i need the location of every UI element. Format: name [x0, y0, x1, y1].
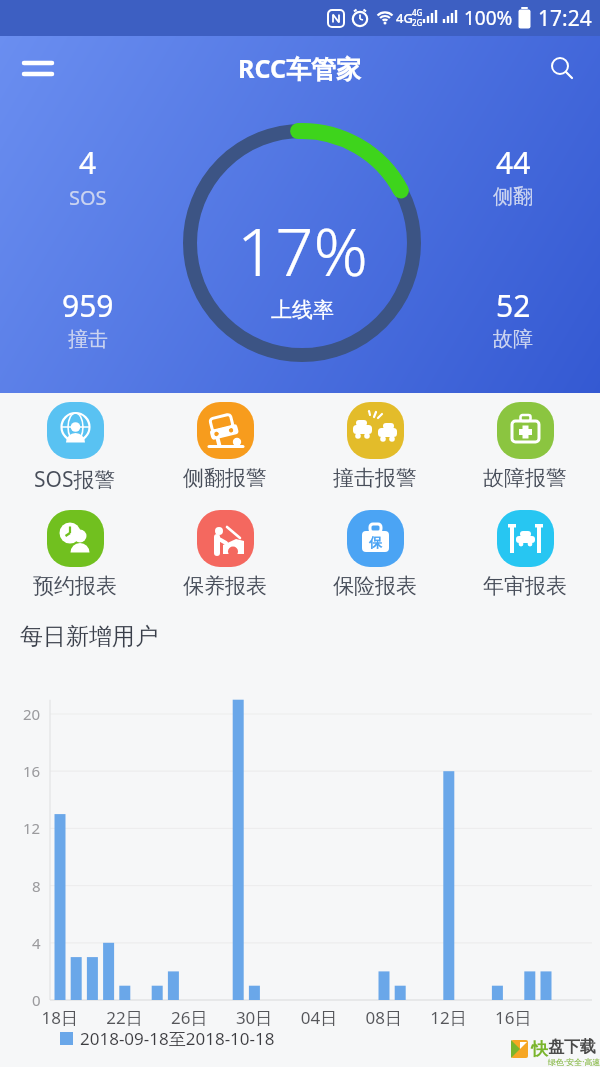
staticText: 预约报表: [33, 573, 117, 599]
staticText: 上线率: [271, 297, 334, 323]
staticText: 2G: [412, 17, 423, 28]
staticText: 52: [496, 285, 531, 326]
button[interactable]: 保养报表: [150, 510, 300, 599]
button[interactable]: 侧翻报警: [150, 402, 300, 491]
staticText: 侧翻: [493, 184, 533, 209]
button[interactable]: 保: [300, 510, 450, 599]
staticText: 侧翻报警: [183, 465, 267, 491]
staticText: 4G: [396, 9, 413, 27]
staticText: 44: [496, 142, 531, 183]
staticText: 故障报警: [483, 465, 567, 491]
button[interactable]: SOS报警: [0, 402, 150, 494]
button[interactable]: 预约报表: [0, 510, 150, 599]
button[interactable]: 故障报警: [450, 402, 600, 491]
staticText: 撞击: [68, 327, 108, 352]
staticText: 年审报表: [483, 573, 567, 599]
staticText: 959: [62, 285, 114, 326]
staticText: 故障: [493, 327, 533, 352]
staticText: SOS: [69, 184, 107, 211]
staticText: 保: [369, 534, 382, 550]
button[interactable]: 年审报表: [450, 510, 600, 599]
staticText: 4G: [412, 7, 423, 18]
staticText: 保险报表: [333, 573, 417, 599]
staticText: 撞击报警: [333, 465, 417, 491]
button[interactable]: [540, 46, 584, 90]
staticText: SOS报警: [34, 465, 116, 494]
staticText: 每日新增用户: [20, 622, 158, 651]
staticText: 4: [79, 142, 97, 183]
button[interactable]: [16, 46, 60, 90]
staticText: 100%: [464, 5, 513, 31]
staticText: 17:24: [538, 4, 592, 33]
button[interactable]: 撞击报警: [300, 402, 450, 491]
staticText: 保养报表: [183, 573, 267, 599]
staticText: RCC车管家: [238, 51, 362, 85]
staticText: 17%: [237, 204, 368, 295]
